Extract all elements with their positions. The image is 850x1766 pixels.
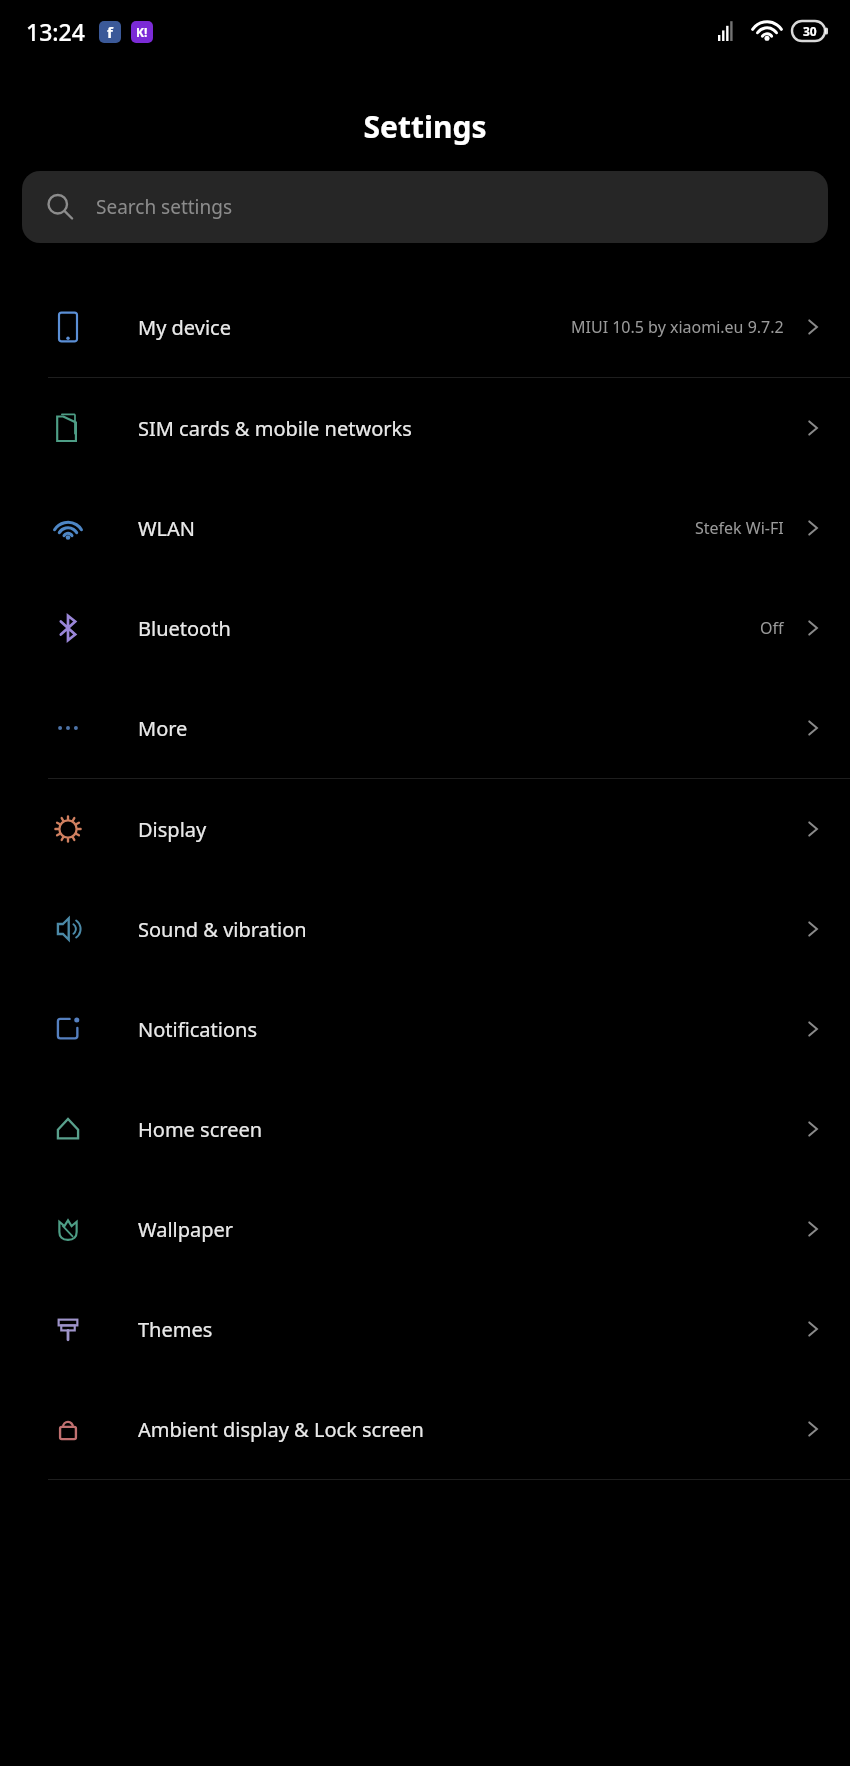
button[interactable]: More [0, 678, 850, 778]
button[interactable]: Bluetooth [0, 578, 850, 678]
staticText: K! [136, 24, 148, 40]
staticText: Sound & vibration [138, 916, 307, 943]
staticText: Ambient display & Lock screen [138, 1416, 424, 1443]
button[interactable]: Wallpaper [0, 1179, 850, 1279]
staticText: f [107, 22, 113, 42]
button[interactable]: Display [0, 779, 850, 879]
button[interactable]: WLAN [0, 478, 850, 578]
staticText: Off [760, 617, 784, 639]
staticText: 13:24 [26, 16, 85, 47]
staticText: 30 [803, 23, 817, 39]
button[interactable]: Home screen [0, 1079, 850, 1179]
staticText: WLAN [138, 515, 196, 542]
button[interactable]: Ambient display & Lock screen [0, 1379, 850, 1479]
staticText: Home screen [138, 1116, 263, 1143]
staticText: Settings [0, 106, 850, 147]
button[interactable]: SIM cards & mobile networks [0, 378, 850, 478]
staticText: Themes [138, 1316, 213, 1343]
button[interactable]: Search settings [22, 171, 828, 243]
staticText: More [138, 715, 188, 742]
staticText: Wallpaper [138, 1216, 234, 1243]
staticText: Search settings [96, 194, 233, 220]
button[interactable]: My device [0, 277, 850, 377]
button[interactable]: Sound & vibration [0, 879, 850, 979]
button[interactable]: Notifications [0, 979, 850, 1079]
staticText: SIM cards & mobile networks [138, 415, 412, 442]
staticText: Display [138, 816, 207, 843]
staticText: My device [138, 314, 231, 341]
staticText: MIUI 10.5 by xiaomi.eu 9.7.2 [571, 316, 784, 338]
staticText: Stefek Wi-FI [695, 517, 784, 539]
staticText: Notifications [138, 1016, 257, 1043]
button[interactable]: Themes [0, 1279, 850, 1379]
staticText: Bluetooth [138, 615, 231, 642]
